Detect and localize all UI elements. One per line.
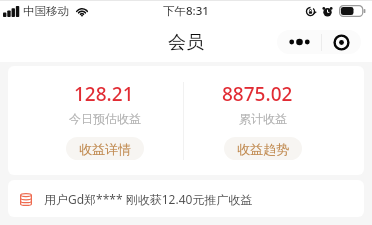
staticText: 下午8:31 bbox=[163, 3, 209, 19]
button[interactable]: 收益详情 bbox=[66, 137, 144, 160]
staticText: 会员 bbox=[168, 31, 204, 54]
button[interactable]: 收益趋势 bbox=[224, 137, 302, 160]
staticText: 收益详情 bbox=[79, 141, 131, 157]
button[interactable]: Close mini program bbox=[322, 30, 361, 54]
staticText: 8875.02 bbox=[222, 81, 293, 107]
staticText: 收益趋势 bbox=[237, 141, 289, 157]
staticText: 今日预估收益 bbox=[69, 111, 141, 126]
staticText: 128.21 bbox=[74, 81, 134, 107]
button[interactable]: 用户Gd郑**** 刚收获12.40元推广收益 bbox=[8, 180, 364, 217]
button[interactable]: More options bbox=[277, 30, 321, 54]
staticText: 累计收益 bbox=[239, 111, 287, 126]
staticText: 用户Gd郑**** 刚收获12.40元推广收益 bbox=[44, 191, 253, 207]
staticText: 中国移动 bbox=[23, 4, 69, 18]
